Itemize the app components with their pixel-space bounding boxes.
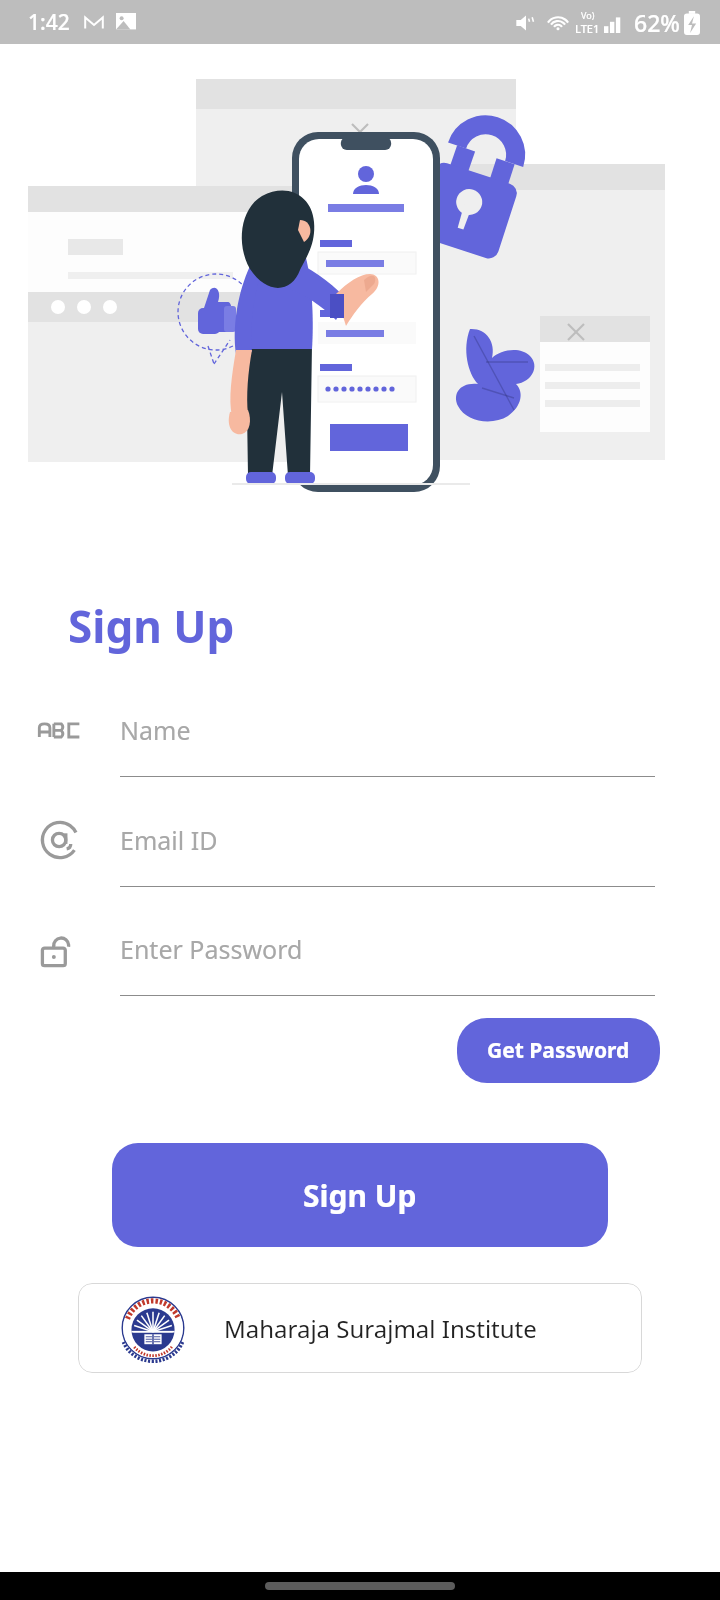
- staticText: Sign Up: [303, 1175, 417, 1216]
- other: Email: [38, 818, 82, 862]
- button[interactable]: Name: [0, 708, 720, 777]
- staticText: Maharaja Surajmal Institute: [224, 1312, 537, 1345]
- button[interactable]: Email: [0, 818, 720, 887]
- button[interactable]: Maharaja Surajmal Institute: [78, 1283, 642, 1373]
- staticText: Name: [120, 713, 191, 747]
- staticText: 1:42: [28, 8, 70, 37]
- button[interactable]: Sign Up: [112, 1143, 608, 1247]
- staticText: 62%: [634, 7, 680, 38]
- staticText: Enter Password: [120, 932, 303, 966]
- other: Name: [38, 708, 82, 752]
- staticText: Email ID: [120, 823, 218, 857]
- staticText: Sign Up: [68, 596, 235, 656]
- button[interactable]: Get Password: [457, 1018, 660, 1083]
- staticText: Vo): [581, 9, 595, 21]
- button[interactable]: Password: [0, 927, 720, 996]
- other: Password: [38, 927, 82, 971]
- staticText: LTE1: [575, 21, 600, 36]
- staticText: Get Password: [487, 1036, 630, 1065]
